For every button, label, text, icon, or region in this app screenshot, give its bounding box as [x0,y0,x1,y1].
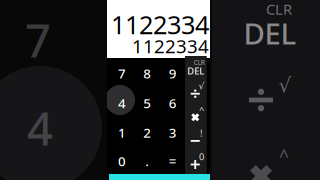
staticText: 4 [27,98,53,158]
staticText: 1 [118,124,126,141]
button[interactable]: 9 [160,59,186,88]
staticText: ! [200,127,203,139]
button[interactable]: Divide [185,80,206,103]
staticText: 1122334 [111,8,209,41]
button[interactable]: Delete [185,56,206,80]
button[interactable]: 1 [109,118,135,147]
button[interactable]: 5 [134,88,160,118]
staticText: . [145,152,149,170]
staticText: 8 [143,64,151,82]
staticText: 0 [118,152,126,170]
staticText: √ [199,81,205,91]
button[interactable]: . [134,146,160,176]
button[interactable]: 0 [109,146,135,176]
staticText: 4 [118,94,126,112]
staticText: 3 [169,124,177,141]
button[interactable]: 6 [160,88,186,118]
staticText: CLR [194,58,205,67]
staticText: √ [278,74,291,96]
staticText: ^ [279,144,289,167]
staticText: CLR [266,0,292,19]
button[interactable]: Multiply [185,103,206,127]
staticText: 5 [143,94,151,112]
staticText: 6 [169,94,177,112]
staticText: 9 [169,64,177,82]
staticText: 7 [25,10,51,70]
staticText: 7 [118,64,126,82]
button[interactable]: 8 [134,59,160,88]
staticText: = [169,152,177,170]
button[interactable]: 4 [109,88,135,118]
staticText: 1122334 [132,34,209,58]
staticText: 2 [143,124,151,141]
staticText: 0 [199,150,204,163]
button[interactable]: 2 [134,118,160,147]
staticText: DEL [187,65,204,77]
button[interactable]: Subtract [185,127,206,150]
button[interactable]: 3 [160,118,186,147]
staticText: ^ [199,103,204,116]
button[interactable]: 7 [109,59,135,88]
staticText: DEL [243,13,296,52]
button[interactable]: Add [185,150,206,174]
button[interactable]: = [160,146,186,176]
